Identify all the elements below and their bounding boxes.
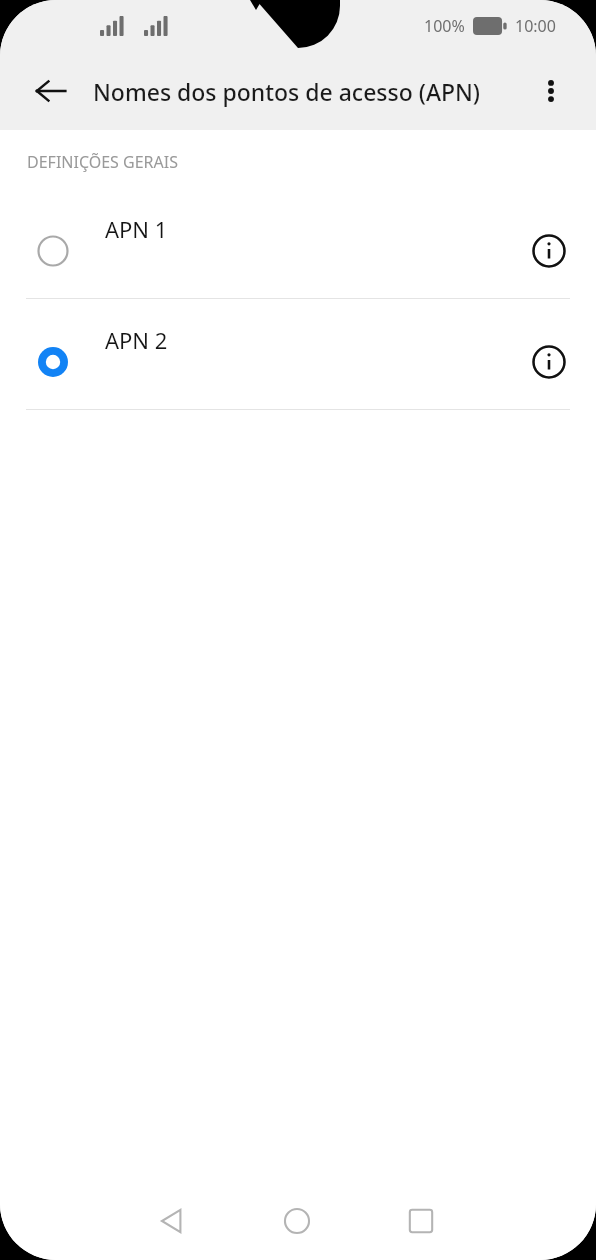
button[interactable]: Home [267,1182,327,1260]
button[interactable]: Recent apps [391,1182,451,1260]
button[interactable]: APN 1 [0,188,596,298]
staticText: DEFINIÇÕES GERAIS [27,151,178,173]
button[interactable]: Back [142,1182,202,1260]
staticText: 10:00 [515,15,556,37]
button[interactable]: Back [21,61,81,121]
button[interactable]: Details for APN 1 [521,223,577,279]
button[interactable]: Details for APN 2 [521,334,577,390]
staticText: APN 2 [105,325,168,355]
staticText: Nomes dos pontos de acesso (APN) [93,76,481,107]
staticText: 100% [424,15,465,37]
staticText: APN 1 [105,214,168,244]
button[interactable]: APN 2 [0,299,596,409]
button[interactable]: More options [523,63,579,119]
